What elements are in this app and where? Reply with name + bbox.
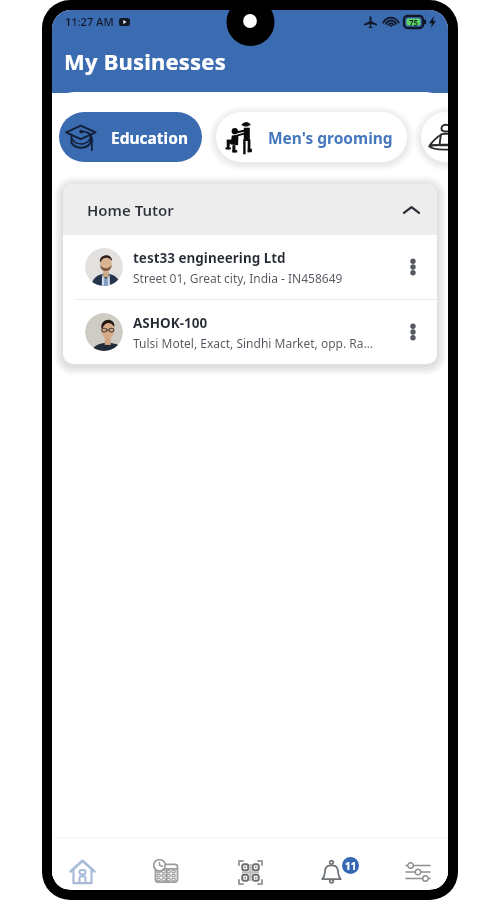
staticText: 11:27 AM xyxy=(65,14,114,29)
staticText: 11 xyxy=(345,859,357,873)
staticText: Tulsi Motel, Exact, Sindhi Market, opp. … xyxy=(133,335,373,351)
button[interactable]: Home xyxy=(60,855,104,889)
button[interactable]: ASHOK-100 xyxy=(63,300,437,364)
staticText: Street 01, Great city, India - IN458649 xyxy=(133,270,343,286)
button[interactable]: Scan QR code xyxy=(228,855,272,889)
button[interactable]: test33 engineering Ltd xyxy=(63,235,437,299)
staticText: Education xyxy=(111,127,188,148)
button[interactable]: Yoga classes xyxy=(421,112,448,162)
button[interactable]: Settings xyxy=(396,855,440,889)
button[interactable]: Notifications xyxy=(312,855,356,889)
button[interactable]: More options xyxy=(403,257,423,277)
staticText: My Businesses xyxy=(64,46,226,76)
button[interactable]: Home Tutor xyxy=(63,184,437,235)
staticText: 75 xyxy=(409,17,419,28)
staticText: test33 engineering Ltd xyxy=(133,249,286,267)
button[interactable]: More options xyxy=(403,322,423,342)
other: Collapse xyxy=(404,206,419,214)
button[interactable]: Bookings xyxy=(144,855,188,889)
staticText: Men's grooming xyxy=(268,127,393,148)
staticText: ASHOK-100 xyxy=(133,314,208,332)
staticText: Home Tutor xyxy=(87,200,174,220)
button[interactable]: Education xyxy=(59,112,202,162)
button[interactable]: Men's grooming xyxy=(216,112,407,162)
